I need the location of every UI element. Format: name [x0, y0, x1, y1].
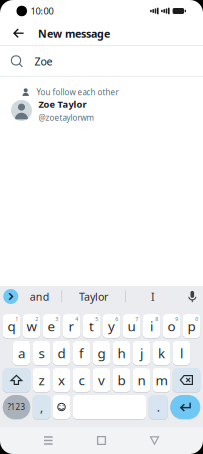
button[interactable]: j: [133, 341, 150, 365]
staticText: 3: [55, 315, 58, 323]
button[interactable]: n: [133, 368, 150, 392]
staticText: m: [155, 371, 167, 389]
button[interactable]: [188, 290, 197, 302]
staticText: l: [180, 344, 183, 362]
staticText: 10:00: [30, 5, 53, 17]
button[interactable]: a: [13, 341, 30, 365]
staticText: t: [89, 317, 94, 335]
button[interactable]: [97, 436, 106, 445]
staticText: Taylor: [79, 289, 108, 304]
staticText: p: [187, 317, 195, 335]
staticText: v: [98, 371, 105, 389]
button[interactable]: d: [53, 341, 70, 365]
button[interactable]: [3, 289, 18, 304]
staticText: @zoetaylorwm: [38, 112, 93, 123]
staticText: i: [150, 317, 153, 335]
staticText: .: [157, 399, 160, 415]
button[interactable]: [173, 368, 200, 392]
button[interactable]: ,: [33, 395, 50, 419]
staticText: w: [26, 317, 36, 335]
staticText: ?123: [7, 402, 25, 412]
staticText: 4: [75, 315, 78, 323]
staticText: Zoe Taylor: [38, 98, 86, 110]
staticText: and: [30, 289, 50, 304]
staticText: You follow each other: [36, 87, 118, 97]
staticText: s: [38, 344, 44, 362]
staticText: c: [78, 371, 84, 389]
button[interactable]: [0, 28, 24, 38]
button[interactable]: q: [3, 314, 20, 338]
button[interactable]: Zoe: [0, 46, 203, 76]
staticText: z: [38, 371, 44, 389]
staticText: ,: [40, 399, 43, 415]
button[interactable]: w: [23, 314, 40, 338]
button[interactable]: [44, 436, 53, 445]
button[interactable]: [150, 436, 159, 445]
button[interactable]: g: [93, 341, 110, 365]
button[interactable]: s: [33, 341, 50, 365]
button[interactable]: I: [126, 289, 180, 304]
staticText: 8: [155, 315, 158, 323]
button[interactable]: e: [43, 314, 60, 338]
staticText: k: [158, 344, 165, 362]
button[interactable]: Zoe Taylor: [0, 97, 203, 123]
button[interactable]: y: [103, 314, 120, 338]
staticText: d: [57, 344, 65, 362]
staticText: 5: [95, 315, 98, 323]
button[interactable]: z: [33, 368, 50, 392]
button[interactable]: x: [53, 368, 70, 392]
button[interactable]: ?123: [3, 395, 30, 419]
staticText: 6: [115, 315, 118, 323]
staticText: y: [108, 317, 115, 335]
button[interactable]: o: [163, 314, 180, 338]
staticText: 7: [135, 315, 138, 323]
staticText: g: [97, 344, 105, 362]
button[interactable]: c: [73, 368, 90, 392]
button[interactable]: p: [183, 314, 200, 338]
staticText: h: [117, 344, 125, 362]
staticText: f: [79, 344, 84, 362]
button[interactable]: and: [18, 289, 61, 304]
button[interactable]: b: [113, 368, 130, 392]
staticText: I: [151, 289, 155, 304]
button[interactable]: v: [93, 368, 110, 392]
staticText: e: [47, 317, 55, 335]
button[interactable]: r: [63, 314, 80, 338]
staticText: New message: [38, 26, 110, 41]
button[interactable]: t: [83, 314, 100, 338]
staticText: Zoe: [34, 54, 52, 68]
staticText: x: [58, 371, 65, 389]
staticText: u: [127, 317, 135, 335]
button[interactable]: [3, 368, 30, 392]
staticText: a: [18, 344, 25, 362]
button[interactable]: l: [173, 341, 190, 365]
button[interactable]: Taylor: [62, 289, 125, 304]
staticText: b: [117, 371, 125, 389]
button[interactable]: h: [113, 341, 130, 365]
staticText: 2: [35, 315, 38, 323]
staticText: q: [7, 317, 15, 335]
button[interactable]: i: [143, 314, 160, 338]
staticText: j: [140, 344, 143, 362]
button[interactable]: [53, 395, 70, 419]
staticText: o: [167, 317, 175, 335]
staticText: 9: [175, 315, 178, 323]
button[interactable]: .: [149, 395, 168, 419]
staticText: 1: [15, 315, 18, 323]
staticText: 0: [195, 315, 198, 323]
button[interactable]: k: [153, 341, 170, 365]
button[interactable]: m: [153, 368, 170, 392]
staticText: r: [68, 317, 74, 335]
button[interactable]: u: [123, 314, 140, 338]
button[interactable]: [170, 395, 200, 419]
staticText: n: [137, 371, 145, 389]
button[interactable]: f: [73, 341, 90, 365]
